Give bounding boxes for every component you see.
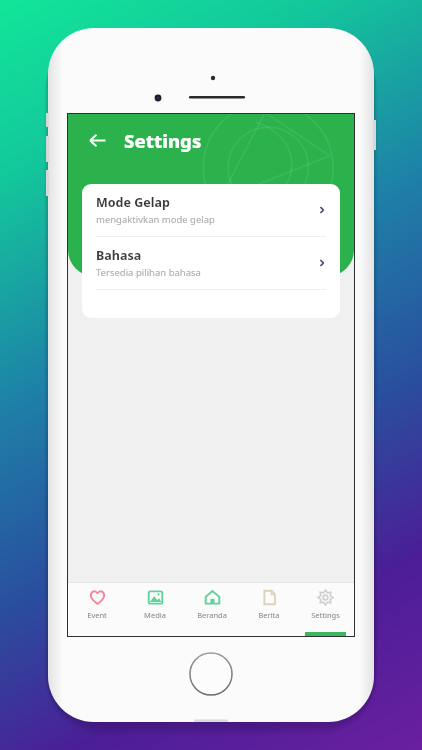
button[interactable]: Beranda: [183, 582, 240, 636]
button[interactable]: Back: [82, 125, 112, 155]
staticText: Tersedia pilihan bahasa: [96, 266, 201, 279]
staticText: Beranda: [197, 610, 227, 620]
staticText: Mode Gelap: [96, 194, 170, 211]
staticText: Media: [144, 610, 166, 620]
button[interactable]: Event: [68, 582, 126, 636]
button[interactable]: Berita: [240, 582, 297, 636]
button[interactable]: Mode Gelap: [82, 184, 340, 236]
button[interactable]: Settings: [297, 582, 354, 636]
staticText: Bahasa: [96, 247, 142, 264]
staticText: Settings: [311, 610, 340, 620]
button[interactable]: Media: [126, 582, 183, 636]
staticText: Settings: [124, 128, 202, 153]
staticText: Event: [87, 610, 107, 620]
staticText: mengaktivkan mode gelap: [96, 213, 215, 226]
button[interactable]: Bahasa: [82, 237, 340, 289]
staticText: Berita: [258, 610, 280, 620]
